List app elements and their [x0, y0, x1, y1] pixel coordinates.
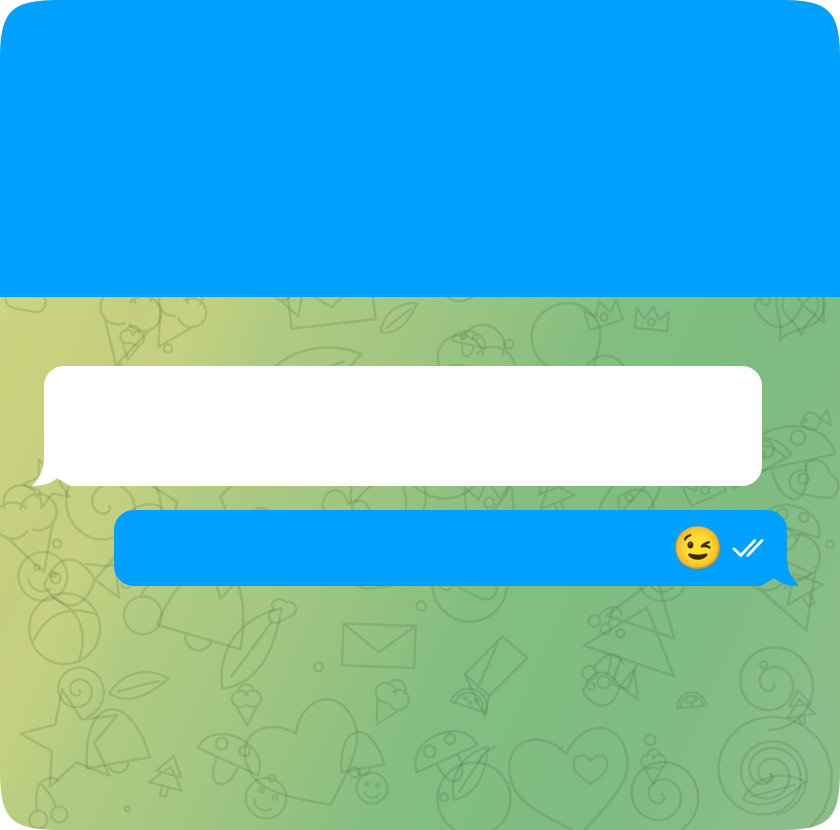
button[interactable]: Received message [32, 366, 762, 486]
button[interactable]: Sent message, read [114, 510, 799, 586]
staticText: 😉 [672, 524, 723, 572]
